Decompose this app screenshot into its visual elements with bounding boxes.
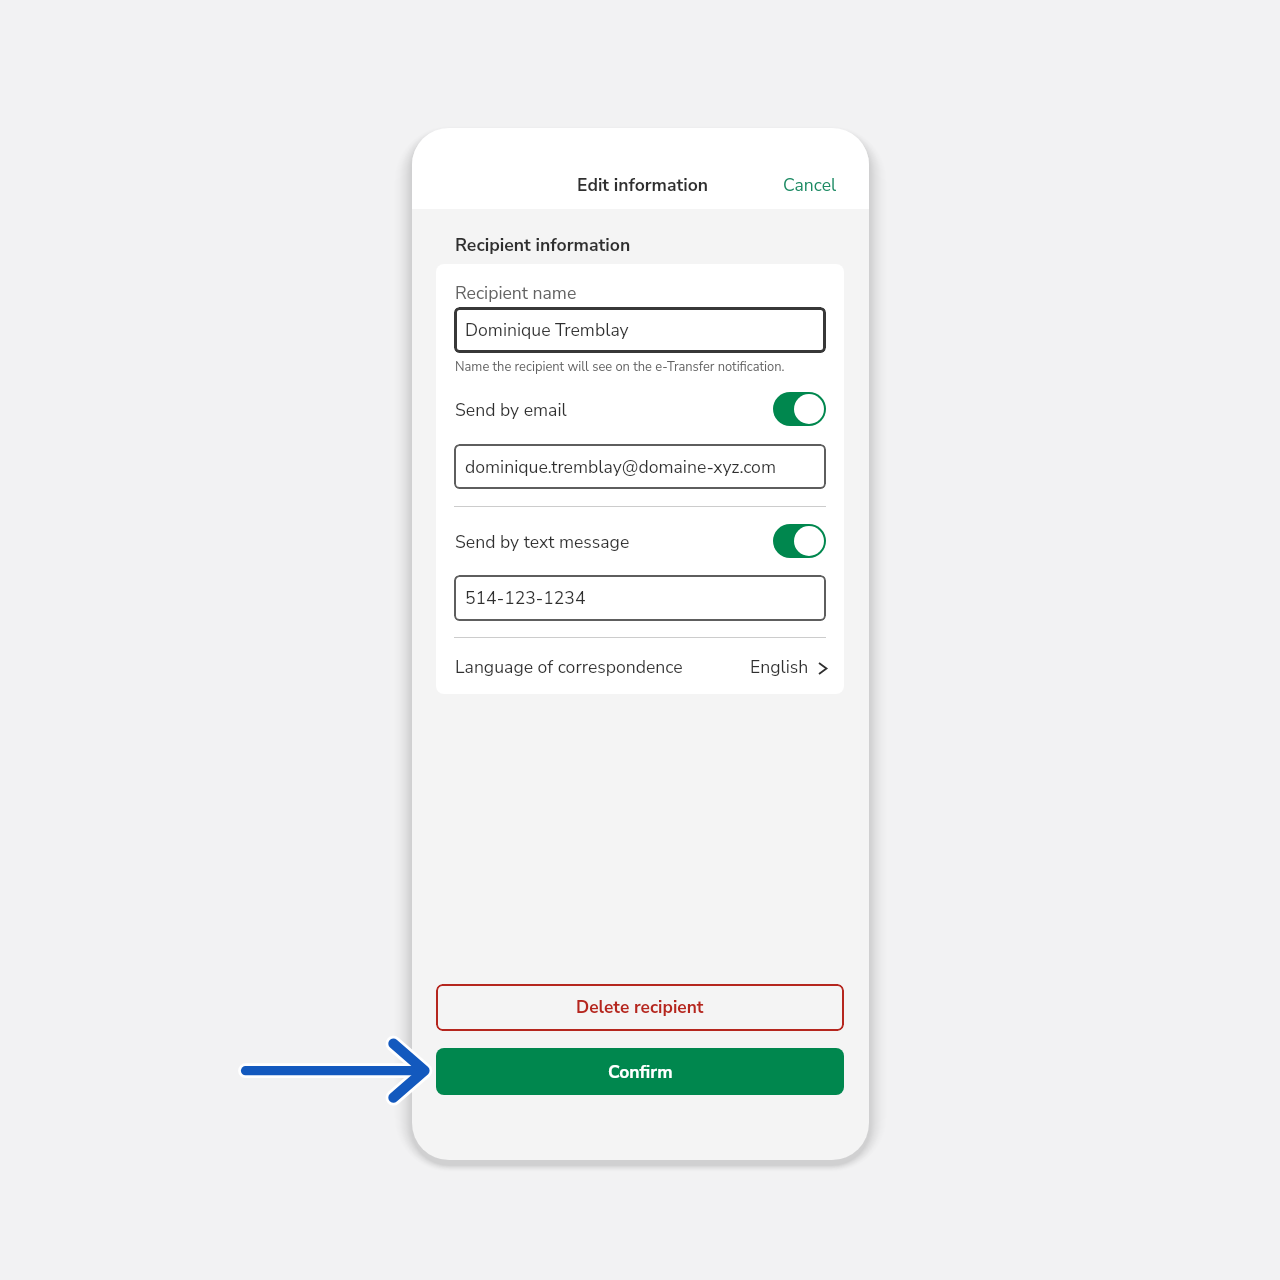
button[interactable]: Dominique Tremblay	[454, 307, 826, 353]
staticText: Dominique Tremblay	[465, 318, 629, 342]
staticText: Language of correspondence	[455, 655, 683, 679]
staticText: Name the recipient will see on the e-Tra…	[455, 358, 785, 376]
staticText: Cancel	[783, 173, 837, 197]
staticText: Recipient information	[455, 233, 631, 257]
button[interactable]: Delete recipient	[436, 984, 844, 1031]
button[interactable]: dominique.tremblay@domaine-xyz.com	[454, 444, 826, 489]
button[interactable]: 514-123-1234	[454, 575, 826, 621]
button[interactable]: Send by email, on	[454, 390, 826, 426]
staticText: Send by email	[455, 398, 567, 422]
button[interactable]: Confirm	[436, 1048, 844, 1095]
staticText: English	[750, 655, 809, 679]
staticText: Recipient name	[455, 281, 577, 305]
button[interactable]: Cancel	[777, 169, 843, 201]
staticText: 514-123-1234	[465, 586, 586, 610]
staticText: Delete recipient	[576, 996, 704, 1020]
staticText: Edit information	[577, 173, 709, 197]
button[interactable]: Language of correspondence	[436, 645, 844, 694]
button[interactable]: Send by text message, on	[454, 522, 826, 558]
staticText: Confirm	[608, 1060, 673, 1084]
staticText: Send by text message	[455, 530, 630, 554]
staticText: dominique.tremblay@domaine-xyz.com	[465, 455, 776, 479]
